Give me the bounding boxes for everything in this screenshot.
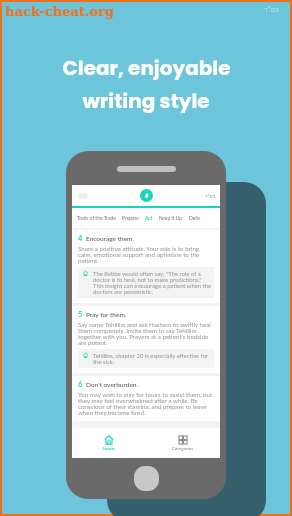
staticText: Pray for them. bbox=[86, 311, 127, 319]
staticText: Deliv bbox=[189, 215, 201, 221]
staticText: The Rebbe would often say: "The role of … bbox=[93, 270, 212, 295]
staticText: 5 bbox=[78, 310, 83, 319]
staticText: 6 bbox=[78, 380, 83, 389]
button[interactable]: Prepare bbox=[119, 215, 142, 221]
staticText: writing style bbox=[82, 87, 210, 115]
staticText: בס"ד bbox=[264, 5, 280, 14]
button[interactable]: Menu bbox=[76, 189, 90, 203]
button[interactable]: Act bbox=[142, 215, 156, 221]
button[interactable]: Categories bbox=[146, 432, 220, 454]
staticText: Categories bbox=[172, 446, 194, 451]
button[interactable]: 6 bbox=[72, 376, 220, 421]
staticText: Say some Tehillim and ask Hashem to swif… bbox=[78, 321, 214, 346]
staticText: Tehillim, chapter 20 is especially effec… bbox=[93, 352, 212, 365]
staticText: Tools of the Trade bbox=[77, 215, 116, 221]
staticText: Share a positive attitude. Your role is … bbox=[78, 245, 214, 264]
staticText: Don't overburden. bbox=[86, 381, 139, 389]
staticText: Act bbox=[145, 215, 153, 221]
staticText: Encourage them. bbox=[86, 235, 135, 243]
staticText: Prepare bbox=[122, 215, 139, 221]
button[interactable]: Tools of the Trade bbox=[74, 215, 119, 221]
button[interactable]: 4 bbox=[72, 230, 220, 303]
staticText: 4 bbox=[78, 234, 83, 243]
staticText: Home bbox=[103, 446, 115, 451]
button[interactable]: Logo bbox=[140, 189, 153, 202]
button[interactable]: Deliv bbox=[186, 215, 204, 221]
staticText: בס"ד bbox=[205, 193, 216, 199]
button[interactable]: Home bbox=[72, 432, 146, 454]
button[interactable]: 5 bbox=[72, 306, 220, 373]
staticText: Clear, enjoyable bbox=[62, 54, 231, 82]
button[interactable]: Keep it Up bbox=[156, 215, 186, 221]
staticText: hack-cheat.org bbox=[5, 4, 114, 19]
staticText: You may wish to stay for hours to assist… bbox=[78, 391, 214, 416]
staticText: Keep it Up bbox=[159, 215, 183, 221]
